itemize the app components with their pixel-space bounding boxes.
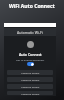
staticText: WiFi Auto Connect [9, 3, 55, 10]
staticText: Network option [21, 85, 40, 88]
button[interactable]: Network option [7, 77, 53, 82]
button[interactable] [27, 62, 34, 66]
staticText: Network option [21, 78, 40, 81]
staticText: Network option [21, 71, 40, 74]
button[interactable]: Network option [7, 70, 53, 75]
button[interactable]: Network option [7, 84, 53, 89]
staticText: Network option [21, 92, 40, 95]
staticText: Automatic Wi-Fi [17, 30, 43, 35]
button[interactable]: Network option [7, 91, 53, 95]
staticText: Auto Connect [19, 52, 42, 57]
staticText: Tap to enable automatic [16, 58, 45, 61]
